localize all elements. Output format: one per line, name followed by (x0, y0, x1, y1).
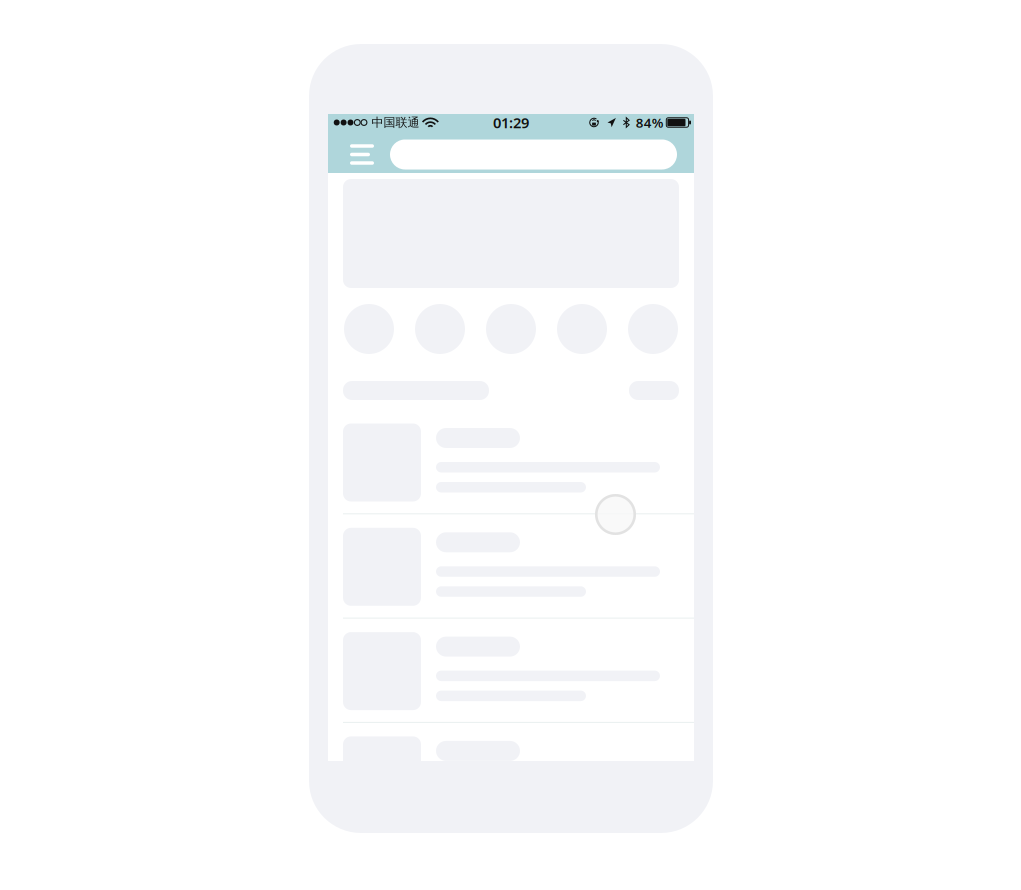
button[interactable]: Category (628, 304, 678, 354)
button[interactable]: Category (415, 304, 465, 354)
button[interactable]: Category (557, 304, 607, 354)
button[interactable] (328, 619, 694, 723)
button[interactable]: Menu (350, 136, 390, 173)
button[interactable] (328, 410, 694, 514)
button[interactable]: Category (486, 304, 536, 354)
button[interactable]: Search (390, 139, 677, 169)
staticText: 84% (636, 114, 664, 131)
button[interactable]: Category (344, 304, 394, 354)
button[interactable] (328, 514, 694, 619)
staticText: 中国联通 (371, 115, 419, 130)
button[interactable] (328, 723, 694, 827)
button[interactable]: See all (629, 381, 679, 400)
staticText: 01:29 (493, 113, 529, 132)
